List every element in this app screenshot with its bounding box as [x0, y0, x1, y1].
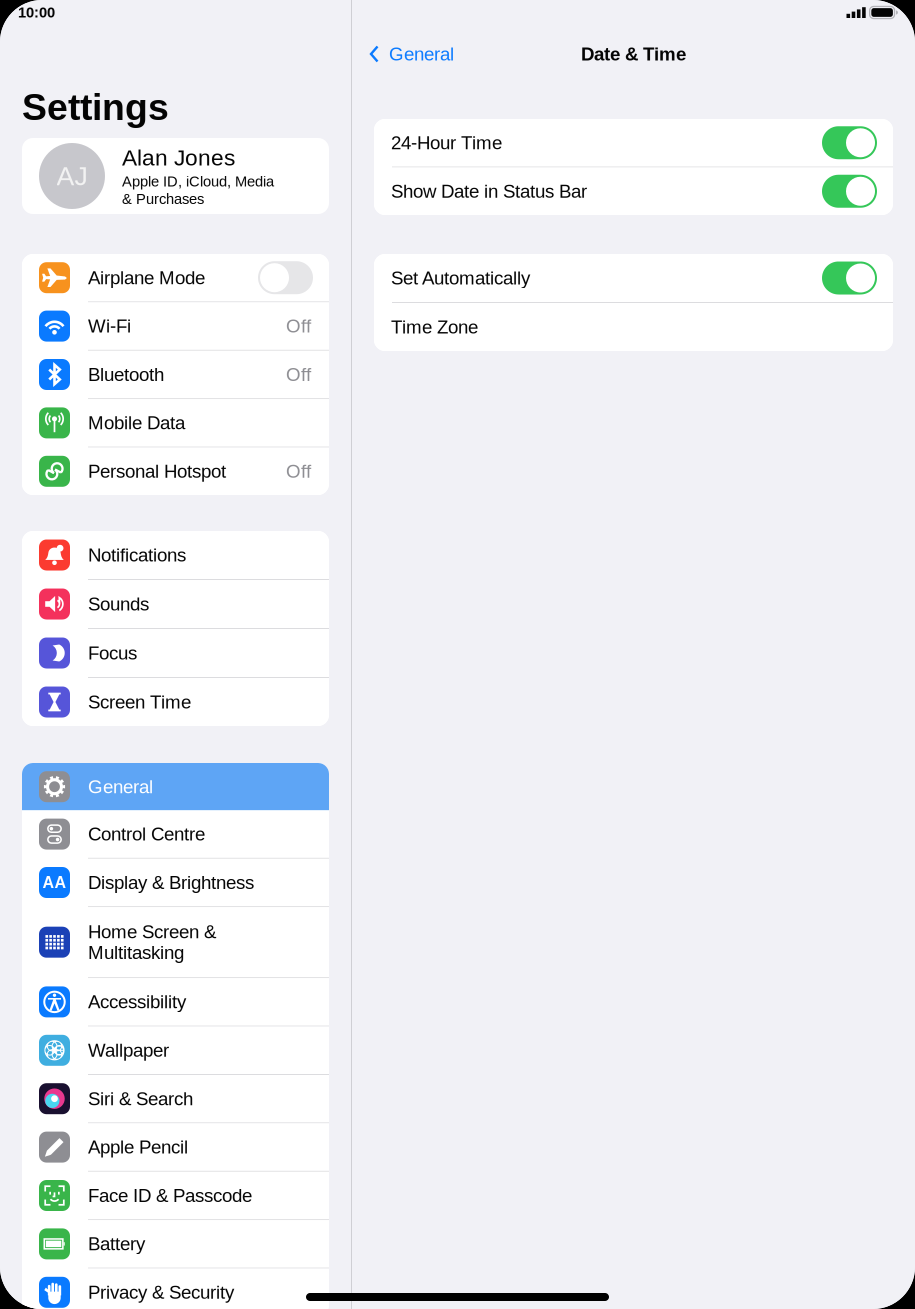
button[interactable]: General — [22, 763, 329, 810]
button[interactable]: Sounds — [22, 580, 329, 628]
button[interactable]: Home Screen & — [22, 907, 329, 977]
button[interactable]: Show Date in Status Bar — [374, 167, 893, 215]
staticText: AJ — [56, 161, 87, 191]
button[interactable]: AA — [22, 859, 329, 906]
staticText: Off — [286, 461, 311, 482]
staticText: Notifications — [88, 545, 186, 565]
button[interactable]: Bluetooth — [22, 351, 329, 398]
staticText: Wallpaper — [88, 1040, 169, 1061]
staticText: Time Zone — [391, 317, 478, 337]
staticText: General — [389, 44, 454, 64]
button[interactable]: AJ — [22, 138, 329, 214]
staticText: Battery — [88, 1233, 145, 1254]
button[interactable]: Control Centre — [22, 810, 329, 858]
button[interactable]: Personal Hotspot — [22, 448, 329, 495]
staticText: Home Screen & — [88, 921, 216, 942]
staticText: 24-Hour Time — [391, 132, 502, 153]
button[interactable]: Face ID & Passcode — [22, 1172, 329, 1219]
button[interactable]: Siri & Search — [22, 1075, 329, 1122]
staticText: Face ID & Passcode — [88, 1185, 252, 1206]
staticText: Accessibility — [88, 991, 186, 1012]
button[interactable]: Accessibility — [22, 978, 329, 1026]
staticText: Multitasking — [88, 942, 184, 963]
button[interactable]: Battery — [22, 1220, 329, 1268]
staticText: Set Automatically — [391, 268, 530, 288]
staticText: 10:00 — [18, 4, 55, 21]
staticText: Control Centre — [88, 824, 205, 845]
staticText: Display & Brightness — [88, 872, 254, 893]
staticText: Show Date in Status Bar — [391, 181, 587, 202]
button[interactable]: Airplane Mode — [22, 254, 329, 301]
staticText: Screen Time — [88, 692, 191, 712]
button[interactable]: Wallpaper — [22, 1027, 329, 1074]
staticText: Personal Hotspot — [88, 461, 226, 482]
staticText: Airplane Mode — [88, 267, 205, 288]
staticText: Settings — [22, 86, 169, 128]
button[interactable]: Screen Time — [22, 678, 329, 726]
button[interactable]: Set Automatically — [374, 254, 893, 302]
staticText: General — [88, 776, 153, 797]
button[interactable]: Mobile Data — [22, 399, 329, 447]
staticText: Focus — [88, 643, 137, 663]
staticText: AA — [42, 874, 66, 891]
button[interactable]: General — [352, 44, 454, 64]
staticText: Bluetooth — [88, 364, 164, 385]
staticText: Privacy & Security — [88, 1282, 234, 1303]
button[interactable]: Apple Pencil — [22, 1123, 329, 1171]
staticText: Mobile Data — [88, 412, 185, 433]
staticText: Off — [286, 364, 311, 385]
staticText: Sounds — [88, 594, 149, 614]
staticText: Wi-Fi — [88, 316, 131, 337]
button[interactable]: Time Zone — [374, 303, 893, 351]
staticText: & Purchases — [122, 191, 204, 207]
button[interactable]: Privacy & Security — [22, 1269, 329, 1309]
button[interactable]: 24-Hour Time — [374, 119, 893, 166]
staticText: Date & Time — [581, 44, 686, 64]
staticText: Apple ID, iCloud, Media — [122, 173, 274, 190]
staticText: Apple Pencil — [88, 1137, 188, 1158]
staticText: Siri & Search — [88, 1088, 193, 1109]
button[interactable]: Notifications — [22, 531, 329, 579]
button[interactable]: Focus — [22, 629, 329, 677]
staticText: Off — [286, 316, 311, 337]
staticText: Alan Jones — [122, 145, 235, 170]
button[interactable]: Wi-Fi — [22, 302, 329, 350]
